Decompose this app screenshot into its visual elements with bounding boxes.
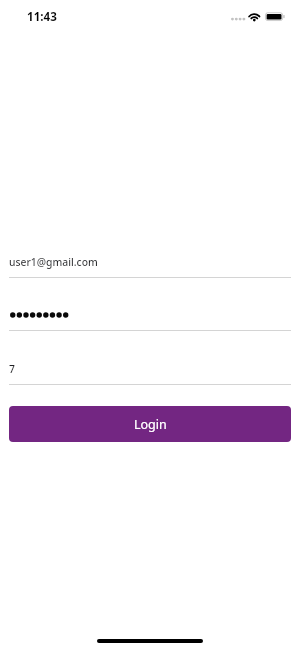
staticText: Login <box>134 416 167 433</box>
button[interactable]: 7 <box>9 360 291 385</box>
staticText: 7 <box>9 362 15 376</box>
staticText: user1@gmail.com <box>9 255 98 269</box>
other: Battery <box>265 12 285 21</box>
button[interactable]: Password <box>9 306 291 331</box>
button[interactable]: user1@gmail.com <box>9 253 291 278</box>
button[interactable]: Login <box>9 406 291 442</box>
other: Wi-Fi <box>248 11 262 22</box>
staticText: 11:43 <box>27 9 57 25</box>
other: Cellular signal <box>231 17 245 21</box>
